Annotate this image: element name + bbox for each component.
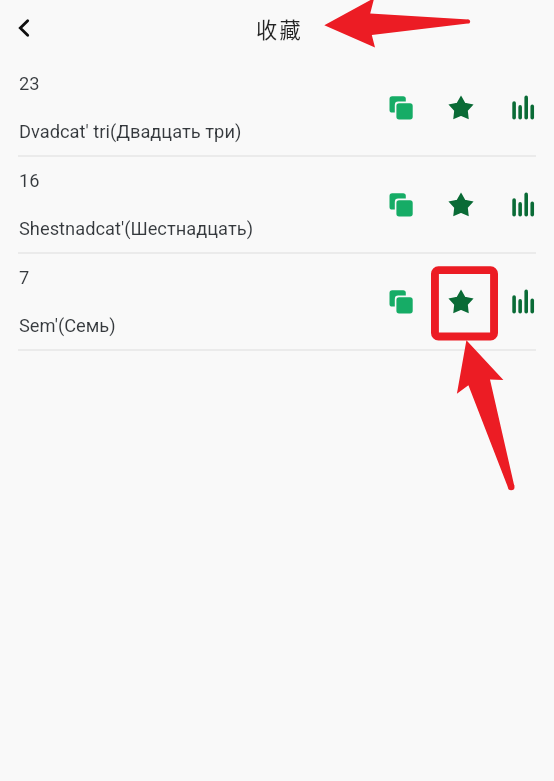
- button[interactable]: Favorite: [443, 284, 479, 320]
- button[interactable]: Play sound: [505, 284, 541, 320]
- staticText: 23: [19, 73, 40, 94]
- button[interactable]: Favorite: [443, 187, 479, 223]
- staticText: Sem'(Семь): [19, 315, 116, 336]
- button[interactable]: Play sound: [505, 187, 541, 223]
- staticText: 收藏: [256, 13, 303, 44]
- staticText: 16: [19, 170, 40, 191]
- button[interactable]: Back: [6, 10, 42, 46]
- staticText: Dvadcat' tri(Двадцать три): [19, 121, 242, 142]
- button[interactable]: Copy: [383, 187, 419, 223]
- button[interactable]: 7: [0, 252, 554, 349]
- button[interactable]: 23: [0, 58, 554, 155]
- button[interactable]: Play sound: [505, 90, 541, 126]
- button[interactable]: Copy: [383, 90, 419, 126]
- staticText: 7: [19, 267, 30, 288]
- button[interactable]: 16: [0, 155, 554, 252]
- button[interactable]: Favorite: [443, 90, 479, 126]
- button[interactable]: Copy: [383, 284, 419, 320]
- staticText: Shestnadcat'(Шестнадцать): [19, 218, 254, 239]
